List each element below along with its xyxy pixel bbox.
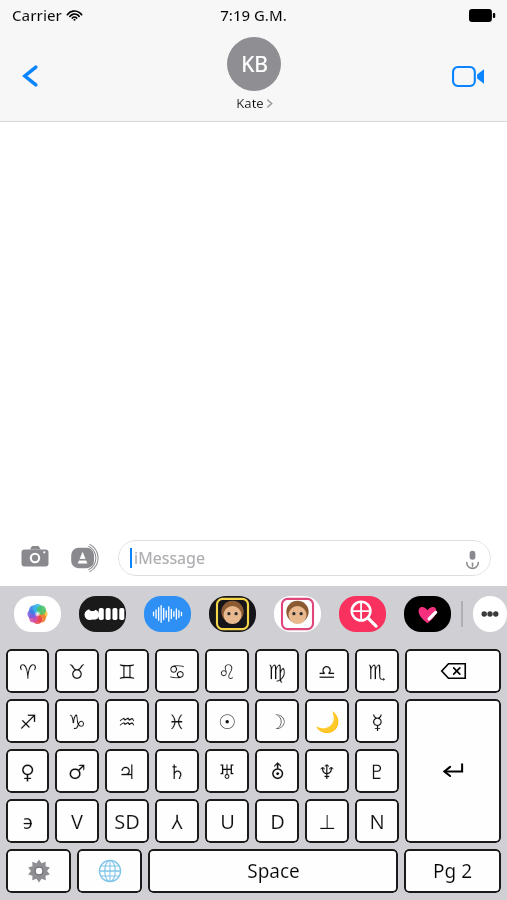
button[interactable]: Camera — [18, 541, 52, 575]
button[interactable]: ♈ — [6, 649, 49, 693]
button[interactable]: V — [55, 799, 99, 843]
staticText: ⛢ — [270, 760, 285, 783]
staticText: ♎ — [318, 660, 336, 683]
staticText: D — [270, 808, 285, 835]
button[interactable]: ♐ — [6, 699, 49, 743]
staticText: ♈ — [19, 660, 37, 683]
button[interactable]: Apps — [68, 541, 102, 575]
staticText: V — [71, 808, 83, 835]
staticText: ♊ — [118, 660, 136, 683]
staticText: ♂ — [68, 760, 86, 783]
button[interactable]: ♓ — [155, 699, 199, 743]
button[interactable]: ♒ — [105, 699, 149, 743]
button[interactable]: KB — [227, 37, 281, 112]
staticText: ⊥ — [318, 810, 336, 833]
button[interactable]: Space — [148, 849, 398, 893]
button[interactable]: ☽ — [255, 699, 299, 743]
staticText: SD — [114, 808, 140, 835]
staticText: ♑ — [68, 710, 86, 733]
button[interactable]: ♑ — [55, 699, 99, 743]
button[interactable]: ♉ — [55, 649, 99, 693]
staticText: ♓ — [168, 710, 186, 733]
staticText: Kate — [236, 94, 264, 112]
staticText: ♃ — [118, 760, 136, 783]
button[interactable]: Delete — [405, 649, 501, 693]
button[interactable]: ♂ — [55, 749, 99, 793]
button[interactable]: iMessage — [118, 540, 491, 576]
staticText: ☿ — [371, 710, 384, 733]
button[interactable]: ♊ — [105, 649, 149, 693]
staticText: ♅ — [218, 760, 236, 783]
staticText: ♉ — [68, 660, 86, 683]
button[interactable]: ♌ — [205, 649, 249, 693]
button[interactable]: D — [255, 799, 299, 843]
button[interactable]: ♅ — [205, 749, 249, 793]
button[interactable]: ♇ — [355, 749, 399, 793]
staticText: Carrier — [12, 5, 62, 25]
staticText: ɔ̵ — [23, 808, 33, 835]
staticText: ☽ — [268, 710, 286, 733]
button[interactable]: Back — [8, 53, 54, 99]
button[interactable]: ♃ — [105, 749, 149, 793]
staticText: 🌙 — [315, 710, 340, 733]
button[interactable]: 🌙 — [305, 699, 349, 743]
button[interactable]: ⅄ — [155, 799, 199, 843]
staticText: ♍ — [268, 660, 286, 683]
button[interactable]: iMessage app — [209, 596, 256, 632]
button[interactable]: iMessage app — [339, 596, 386, 632]
staticText: ♀ — [20, 760, 35, 783]
button[interactable]: ♏ — [355, 649, 399, 693]
button[interactable]: ♀ — [6, 749, 49, 793]
staticText: iMessage — [134, 547, 205, 569]
button[interactable]: U — [205, 799, 249, 843]
staticText: ☉ — [218, 710, 236, 733]
button[interactable]: iMessage app — [473, 596, 507, 632]
staticText: ♒ — [118, 710, 136, 733]
button[interactable]: ♄ — [155, 749, 199, 793]
staticText: ♄ — [168, 760, 186, 783]
button[interactable]: ☉ — [205, 699, 249, 743]
button[interactable]: iMessage app — [144, 596, 191, 632]
button[interactable]: Next keyboard — [77, 849, 142, 893]
button[interactable]: iMessage app — [79, 596, 126, 632]
staticText: Pg 2 — [433, 858, 472, 884]
button[interactable]: iMessage app — [404, 596, 451, 632]
button[interactable]: SD — [105, 799, 149, 843]
button[interactable]: iMessage app — [14, 596, 61, 632]
button[interactable]: ⛢ — [255, 749, 299, 793]
button[interactable]: Return — [405, 699, 501, 843]
staticText: ♆ — [318, 760, 336, 783]
staticText: KB — [241, 50, 268, 79]
button[interactable]: FaceTime video call — [445, 53, 491, 99]
staticText: ⅄ — [171, 808, 183, 835]
button[interactable]: Settings — [6, 849, 71, 893]
staticText: Space — [247, 858, 300, 884]
staticText: ♐ — [19, 710, 37, 733]
button[interactable]: ♋ — [155, 649, 199, 693]
staticText: U — [220, 808, 235, 835]
button[interactable]: ♆ — [305, 749, 349, 793]
staticText: ♏ — [368, 660, 386, 683]
staticText: ♇ — [368, 760, 386, 783]
staticText: N — [369, 808, 385, 835]
button[interactable]: ɔ̵ — [6, 799, 49, 843]
button[interactable]: ☿ — [355, 699, 399, 743]
button[interactable]: ♍ — [255, 649, 299, 693]
staticText: ♌ — [218, 660, 236, 683]
button[interactable]: ⊥ — [305, 799, 349, 843]
button[interactable]: Pg 2 — [404, 849, 501, 893]
button[interactable]: N — [355, 799, 399, 843]
staticText: 7:19 G.M. — [220, 5, 287, 25]
button[interactable]: ♎ — [305, 649, 349, 693]
staticText: ♋ — [168, 660, 186, 683]
button[interactable]: iMessage app — [274, 596, 321, 632]
